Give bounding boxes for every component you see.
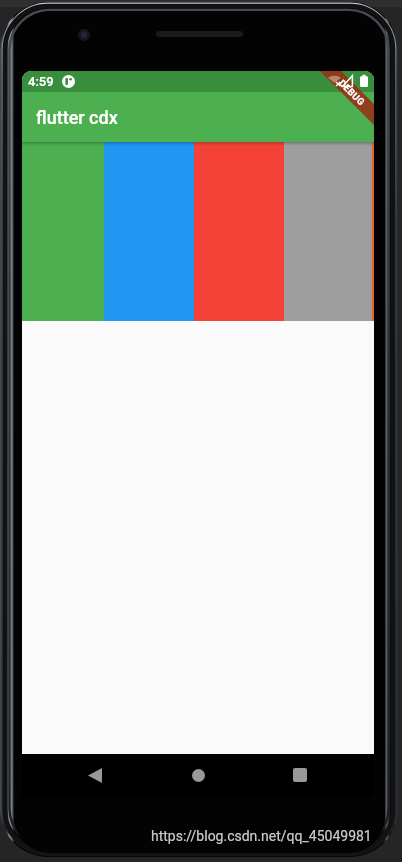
staticText: 4:59 xyxy=(28,74,54,89)
staticText: DEBUG xyxy=(337,77,367,108)
button[interactable]: Home xyxy=(186,763,210,787)
button[interactable] xyxy=(284,142,372,321)
staticText: flutter cdx xyxy=(36,107,118,128)
button[interactable]: Back xyxy=(83,763,107,787)
button[interactable] xyxy=(22,142,104,321)
button[interactable] xyxy=(194,142,284,321)
button[interactable] xyxy=(104,142,194,321)
button[interactable]: Recents xyxy=(288,763,312,787)
staticText: https://blog.csdn.net/qq_45049981 xyxy=(151,828,372,844)
